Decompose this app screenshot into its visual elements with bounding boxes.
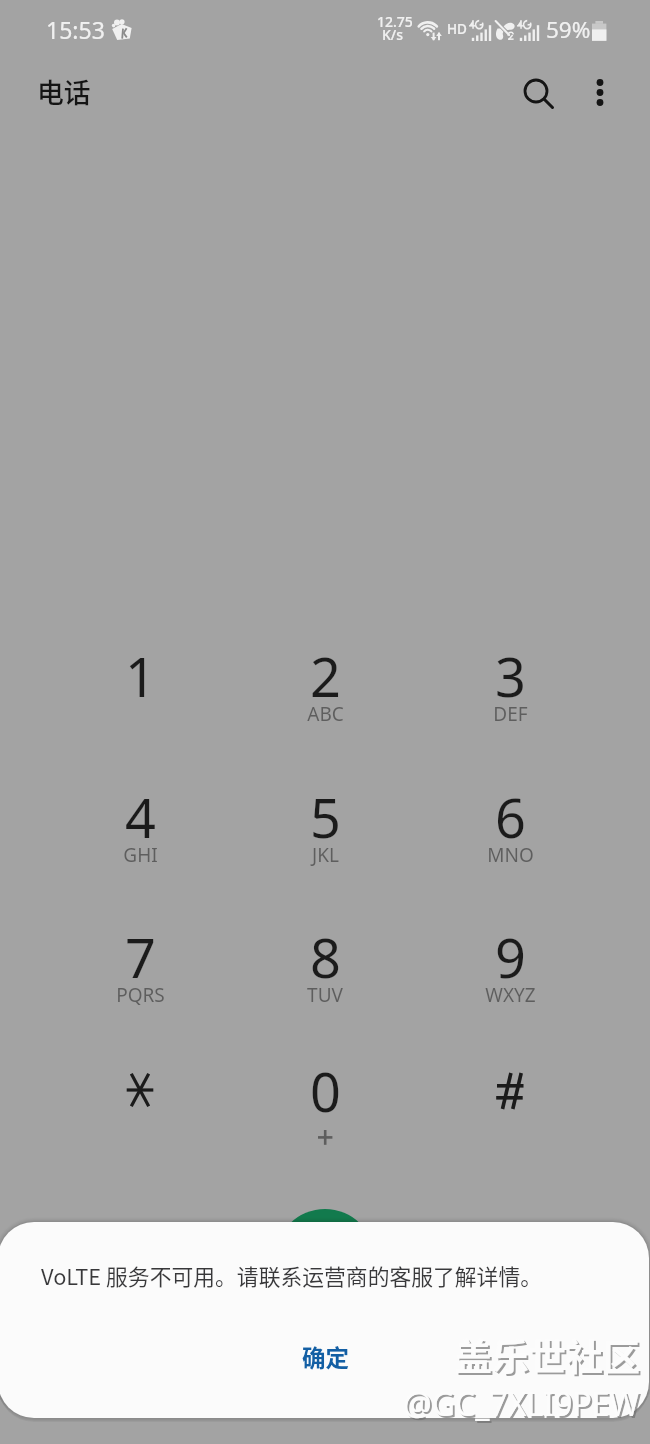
staticText: 59% [546, 14, 591, 45]
staticText: 3 [495, 639, 526, 701]
staticText: 8 [310, 920, 341, 982]
button[interactable]: Search [512, 67, 565, 120]
staticText: 4 [125, 780, 156, 842]
button[interactable]: More options [573, 66, 626, 119]
staticText: ABC [307, 701, 344, 727]
button[interactable]: 7 [62, 920, 218, 1042]
button[interactable]: Call [275, 1209, 375, 1309]
button[interactable]: 确定 [266, 1327, 384, 1387]
staticText: 盖乐世社区 [457, 1330, 642, 1384]
staticText: 15:53 [46, 14, 105, 45]
staticText: 2 [310, 639, 341, 701]
staticText: VoLTE 服务不可用。请联系运营商的客服了解详情。 [41, 1260, 543, 1292]
staticText: 确定 [302, 1340, 349, 1374]
staticText: 12.75 [377, 12, 413, 31]
staticText: K/s [382, 25, 404, 44]
button[interactable] [432, 1054, 588, 1176]
staticText: 9 [495, 920, 526, 982]
button[interactable]: 5 [247, 780, 403, 902]
button[interactable]: 9 [432, 920, 588, 1042]
button[interactable]: 0 [247, 1054, 403, 1176]
staticText: TUV [307, 982, 343, 1008]
button[interactable]: 2 [247, 639, 403, 761]
staticText: HD [447, 20, 467, 38]
staticText: JKL [312, 842, 339, 868]
staticText: 1 [125, 639, 156, 701]
staticText: 0 [310, 1054, 341, 1116]
button[interactable] [62, 1054, 218, 1176]
staticText: 7 [125, 920, 156, 982]
staticText: @GC_7XLI9PEW [403, 1382, 640, 1426]
staticText: WXYZ [485, 982, 536, 1008]
staticText: 盖乐世社区 [455, 1328, 640, 1382]
staticText: @GC_7XLI9PEW [405, 1384, 642, 1428]
button[interactable]: 1 [62, 639, 218, 761]
staticText: 5 [310, 780, 341, 842]
button[interactable]: 8 [247, 920, 403, 1042]
staticText: MNO [487, 842, 534, 868]
staticText: DEF [493, 701, 528, 727]
staticText: GHI [123, 842, 158, 868]
button[interactable]: 3 [432, 639, 588, 761]
button[interactable]: 6 [432, 780, 588, 902]
button[interactable]: 4 [62, 780, 218, 902]
staticText: 6 [495, 780, 526, 842]
staticText: 电话 [37, 72, 91, 111]
staticText: PQRS [116, 982, 165, 1008]
